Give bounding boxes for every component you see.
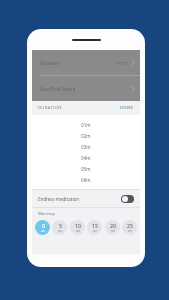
staticText: Start/End Sound bbox=[40, 86, 76, 92]
staticText: sec bbox=[111, 229, 115, 233]
button[interactable]: 25 bbox=[122, 220, 137, 235]
staticText: Duration bbox=[40, 60, 60, 66]
staticText: Warmup bbox=[38, 211, 55, 217]
button[interactable]: 03m bbox=[32, 141, 140, 152]
button[interactable]: 04m bbox=[32, 152, 140, 163]
staticText: 0 bbox=[42, 222, 45, 229]
button[interactable]: 01m bbox=[32, 119, 140, 130]
button[interactable]: Endless meditation bbox=[32, 190, 140, 207]
staticText: 01m bbox=[81, 122, 91, 128]
button[interactable]: 06m bbox=[32, 174, 140, 185]
button[interactable]: 02m bbox=[32, 130, 140, 141]
staticText: 10 bbox=[75, 222, 81, 229]
button[interactable]: DONE bbox=[120, 105, 134, 111]
staticText: Endless meditation bbox=[38, 196, 80, 202]
staticText: sec bbox=[93, 229, 97, 233]
button[interactable]: Start/End Sound bbox=[32, 76, 140, 101]
staticText: 15 bbox=[92, 222, 98, 229]
staticText: 4min bbox=[117, 60, 128, 66]
staticText: sec bbox=[76, 229, 80, 233]
staticText: 02m bbox=[81, 133, 91, 139]
staticText: DONE bbox=[120, 105, 134, 111]
staticText: 5 bbox=[59, 222, 62, 229]
staticText: DURATION bbox=[38, 105, 62, 111]
button[interactable]: Endless meditation toggle bbox=[121, 195, 134, 203]
button[interactable]: 05m bbox=[32, 163, 140, 174]
staticText: sec bbox=[41, 229, 45, 233]
staticText: 03m bbox=[81, 144, 91, 150]
button[interactable]: 5 bbox=[52, 220, 67, 235]
staticText: 06m bbox=[81, 177, 91, 183]
staticText: sec bbox=[128, 229, 132, 233]
button[interactable]: 20 bbox=[105, 220, 120, 235]
staticText: 20 bbox=[110, 222, 116, 229]
staticText: sec bbox=[58, 229, 62, 233]
staticText: 05m bbox=[81, 166, 91, 172]
button[interactable]: 15 bbox=[87, 220, 102, 235]
button[interactable]: 10 bbox=[70, 220, 85, 235]
staticText: 04m bbox=[81, 155, 91, 161]
button[interactable]: 0 bbox=[35, 220, 50, 235]
staticText: 25 bbox=[127, 222, 133, 229]
